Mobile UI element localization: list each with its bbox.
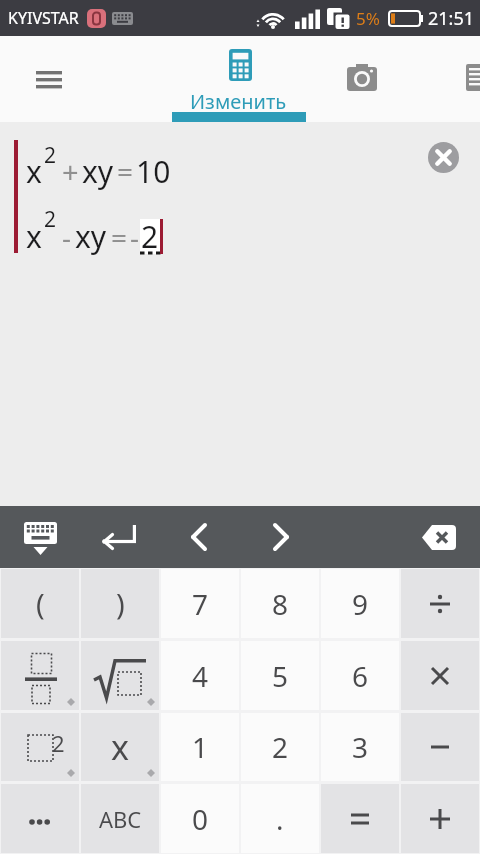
- staticText: -: [130, 218, 140, 256]
- button[interactable]: [81, 641, 159, 710]
- staticText: x: [111, 724, 129, 770]
- staticText: 9: [352, 585, 369, 623]
- button[interactable]: [428, 142, 459, 173]
- button[interactable]: [8, 506, 72, 568]
- button[interactable]: [1, 641, 79, 710]
- staticText: 0: [192, 800, 209, 838]
- staticText: .: [276, 800, 284, 838]
- button[interactable]: 5: [241, 641, 319, 710]
- button[interactable]: [452, 51, 480, 107]
- staticText: 5%: [356, 7, 380, 30]
- button[interactable]: (: [1, 569, 79, 638]
- button[interactable]: [88, 506, 152, 568]
- staticText: xy: [75, 216, 107, 257]
- button[interactable]: ABC: [81, 784, 159, 853]
- button[interactable]: Изменить: [173, 36, 307, 122]
- button[interactable]: [336, 51, 388, 107]
- staticText: 3: [352, 728, 369, 766]
- button[interactable]: [321, 784, 399, 853]
- button[interactable]: 6: [321, 641, 399, 710]
- staticText: 2: [44, 205, 57, 234]
- button[interactable]: x: [81, 713, 159, 781]
- button[interactable]: [401, 784, 479, 853]
- staticText: 4: [192, 657, 209, 695]
- button[interactable]: [1, 784, 79, 853]
- staticText: 10: [136, 151, 171, 192]
- staticText: 6: [352, 657, 369, 695]
- staticText: 1: [192, 728, 209, 766]
- button[interactable]: 3: [321, 713, 399, 781]
- button[interactable]: ): [81, 569, 159, 638]
- button[interactable]: [408, 506, 472, 568]
- button[interactable]: .: [241, 784, 319, 853]
- button[interactable]: 8: [241, 569, 319, 638]
- button[interactable]: 2: [241, 713, 319, 781]
- staticText: ABC: [99, 804, 142, 834]
- button[interactable]: [168, 506, 232, 568]
- staticText: 2: [52, 728, 65, 758]
- button[interactable]: 9: [321, 569, 399, 638]
- staticText: 5: [272, 657, 289, 695]
- staticText: x: [26, 216, 42, 257]
- staticText: =: [111, 218, 128, 256]
- button[interactable]: 2: [1, 713, 79, 781]
- button[interactable]: [401, 713, 479, 781]
- staticText: 7: [192, 585, 209, 623]
- staticText: xy: [82, 151, 114, 192]
- staticText: -: [62, 218, 72, 256]
- staticText: 2: [44, 141, 57, 170]
- button[interactable]: 1: [161, 713, 239, 781]
- button[interactable]: [22, 58, 76, 104]
- button[interactable]: 7: [161, 569, 239, 638]
- staticText: =: [117, 152, 134, 190]
- button[interactable]: [401, 569, 479, 638]
- button[interactable]: 0: [161, 784, 239, 853]
- staticText: +: [62, 152, 79, 191]
- staticText: 21:51: [428, 6, 475, 31]
- staticText: 2: [272, 728, 289, 766]
- staticText: 2: [141, 216, 159, 257]
- staticText: KYIVSTAR: [8, 7, 79, 29]
- staticText: 8: [272, 585, 289, 623]
- staticText: ): [116, 584, 125, 623]
- staticText: x: [26, 151, 42, 192]
- button[interactable]: 4: [161, 641, 239, 710]
- staticText: Изменить: [190, 88, 287, 115]
- button[interactable]: [248, 506, 312, 568]
- staticText: (: [36, 584, 45, 623]
- button[interactable]: [401, 641, 479, 710]
